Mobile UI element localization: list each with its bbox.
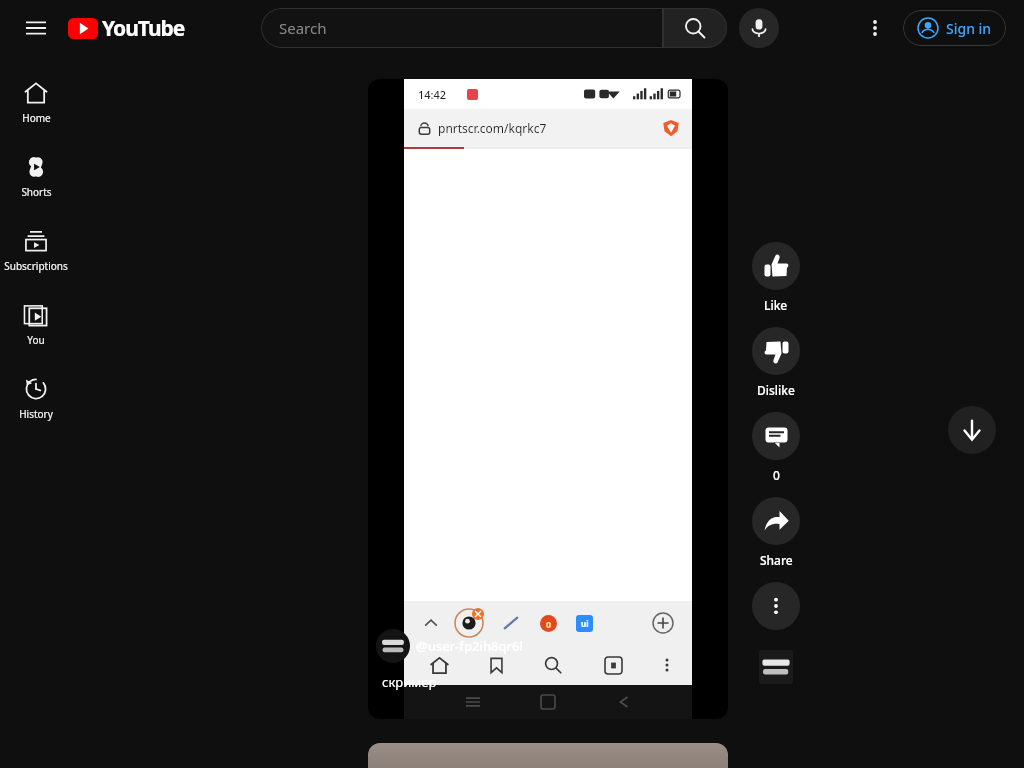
staticText: pnrtscr.com/kqrkc7 (438, 120, 547, 136)
button[interactable]: Like (740, 242, 812, 313)
staticText: Dislike (757, 382, 795, 398)
staticText: Sign in (946, 19, 992, 38)
staticText: Subscriptions (4, 259, 68, 273)
button[interactable] (759, 650, 793, 684)
button[interactable]: Search (261, 8, 663, 48)
staticText: History (19, 407, 53, 421)
button[interactable]: Share (740, 497, 812, 568)
button[interactable]: Subscriptions (0, 214, 72, 288)
staticText: YouTube (102, 14, 185, 43)
staticText: You (27, 333, 45, 347)
button[interactable] (376, 629, 410, 663)
button[interactable]: Home (0, 66, 72, 140)
staticText: скример (382, 673, 437, 691)
button[interactable]: YouTube (68, 14, 185, 43)
button[interactable]: Settings (855, 8, 895, 48)
staticText: Shorts (21, 185, 52, 199)
staticText: 14:42 (418, 87, 447, 102)
staticText: Like (764, 297, 788, 313)
button[interactable]: Shorts (0, 140, 72, 214)
button[interactable]: Dislike (740, 327, 812, 398)
staticText: 0 (773, 467, 780, 483)
button[interactable]: More actions (752, 582, 800, 630)
staticText: 0 (546, 618, 552, 630)
button[interactable]: Next video (948, 406, 996, 454)
button[interactable]: You (0, 288, 72, 362)
staticText: Home (22, 111, 51, 125)
button[interactable]: Search (663, 8, 727, 48)
staticText: @user-fp2ih8qr6l (416, 637, 524, 655)
button[interactable]: Guide menu (14, 6, 58, 50)
staticText: Search (279, 18, 327, 38)
staticText: Share (760, 552, 793, 568)
button[interactable]: History (0, 362, 72, 436)
button[interactable]: 0 (740, 412, 812, 483)
button[interactable]: Search with your voice (739, 8, 779, 48)
staticText: ui (581, 618, 589, 629)
button[interactable]: Sign in (903, 10, 1006, 46)
